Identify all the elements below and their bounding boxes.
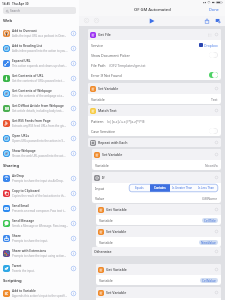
button[interactable]: Info — [71, 191, 76, 196]
button[interactable]: Repeat with Each — [88, 138, 221, 147]
button[interactable]: Info — [71, 61, 76, 66]
staticText: Share — [12, 234, 21, 238]
button[interactable]: Expand URL — [0, 56, 79, 71]
staticText: Tweet — [12, 264, 22, 268]
staticText: Appends this action's input to the speci… — [12, 294, 68, 298]
button[interactable]: Otherwise — [92, 247, 221, 256]
staticText: Adds inline passed into the action to yo… — [12, 49, 68, 53]
button[interactable]: Input — [95, 183, 218, 193]
staticText: Sharing — [3, 163, 20, 169]
staticText: Get Diffbot Article from Webpage — [12, 104, 64, 108]
button[interactable]: Info — [71, 106, 76, 111]
button[interactable]: Run — [149, 18, 155, 24]
button[interactable]: Contains — [150, 184, 170, 192]
button[interactable]: Get Variable — [96, 264, 221, 285]
button[interactable]: Done — [209, 7, 219, 12]
staticText: If — [102, 175, 105, 180]
button[interactable]: Info — [71, 291, 76, 296]
button[interactable]: If — [92, 172, 221, 203]
button[interactable]: Pattern — [91, 116, 218, 126]
button[interactable]: Variable — [99, 275, 218, 285]
button[interactable]: Set Variable — [88, 83, 221, 104]
staticText: GMName — [202, 196, 218, 201]
button[interactable]: Case Sensitive — [91, 126, 218, 136]
button[interactable]: Is Less Than — [194, 184, 218, 192]
button[interactable]: Info — [71, 206, 76, 211]
button[interactable]: Send Email — [0, 201, 79, 216]
button[interactable]: Add to Variable — [0, 286, 79, 300]
button[interactable]: Info — [71, 121, 76, 126]
button[interactable]: Get RSS Feeds from Page — [0, 116, 79, 131]
button[interactable]: Search — [3, 7, 76, 14]
button[interactable]: Undo — [84, 18, 89, 23]
staticText: Contains — [154, 186, 166, 190]
staticText: Web — [3, 18, 13, 24]
button[interactable]: Copy to Clipboard — [0, 186, 79, 201]
staticText: Get RSS Feeds from Page — [12, 119, 51, 123]
button[interactable]: Info — [71, 236, 76, 241]
button[interactable]: Share with Extensions — [0, 246, 79, 261]
staticText: CellTitle — [204, 219, 216, 223]
staticText: Get File — [98, 32, 111, 37]
button[interactable] — [209, 52, 218, 58]
button[interactable]: Share — [204, 18, 210, 24]
button[interactable]: Variable — [91, 94, 218, 104]
staticText: Show Document Picker — [91, 53, 130, 58]
staticText: Set Variable — [106, 290, 127, 295]
button[interactable]: Set Variable — [96, 287, 221, 300]
button[interactable]: Variable — [95, 160, 218, 170]
button[interactable]: Equals — [129, 184, 150, 192]
button[interactable] — [209, 72, 218, 78]
button[interactable] — [209, 128, 218, 134]
staticText: Send Message — [12, 219, 35, 223]
staticText: Show Webpage — [12, 149, 36, 153]
button[interactable]: Tweet — [0, 261, 79, 276]
staticText: Set Variable — [98, 86, 119, 91]
button[interactable]: Is Greater Than — [170, 184, 194, 192]
button[interactable]: Info — [71, 221, 76, 226]
staticText: Add to Variable — [12, 289, 36, 293]
button[interactable]: Info — [71, 251, 76, 256]
button[interactable]: Value — [95, 193, 218, 203]
button[interactable]: Info — [71, 76, 76, 81]
staticText: AirDrop — [12, 174, 25, 178]
button[interactable]: Info — [71, 31, 76, 36]
button[interactable]: Info — [71, 46, 76, 51]
staticText: Gets the contents of the webpage at a… — [12, 94, 65, 98]
button[interactable]: AirDrop — [0, 171, 79, 186]
button[interactable]: File Path — [91, 60, 218, 70]
button[interactable]: Show Document Picker — [91, 50, 218, 60]
button[interactable]: Settings — [215, 18, 221, 24]
button[interactable]: Redo — [94, 18, 99, 23]
button[interactable]: Share — [0, 231, 79, 246]
staticText: Prompts to share the input. — [12, 239, 49, 243]
staticText: Pattern — [91, 119, 104, 124]
button[interactable]: Info — [71, 151, 76, 156]
button[interactable]: M — [0, 101, 79, 116]
button[interactable]: Set Variable — [92, 149, 221, 170]
button[interactable]: Error If Not Found — [91, 70, 218, 80]
button[interactable]: Get Contents of Webpage — [0, 86, 79, 101]
button[interactable]: Info — [71, 136, 76, 141]
button[interactable]: Get File — [88, 29, 221, 80]
staticText: Error If Not Found — [91, 73, 122, 78]
button[interactable]: Match Text — [88, 105, 221, 136]
button[interactable]: Get Contents of URL — [0, 71, 79, 86]
button[interactable]: Info — [71, 176, 76, 181]
button[interactable]: Show Webpage — [0, 146, 79, 161]
staticText: Set Variable — [102, 152, 123, 157]
button[interactable]: Variable — [99, 215, 218, 225]
button[interactable]: Variable — [99, 237, 218, 247]
button[interactable]: Info — [71, 266, 76, 271]
button[interactable]: Service — [91, 40, 218, 50]
staticText: File Path — [91, 63, 106, 68]
button[interactable]: Set Variable — [96, 226, 221, 247]
button[interactable]: Send Message — [0, 216, 79, 231]
button[interactable]: Open URLs — [0, 131, 79, 146]
button[interactable]: Get Variable — [96, 204, 221, 225]
button[interactable]: Add to Overcast — [0, 26, 79, 41]
staticText: Search — [10, 9, 21, 13]
button[interactable]: Info — [71, 91, 76, 96]
button[interactable]: Add to Reading List — [0, 41, 79, 56]
